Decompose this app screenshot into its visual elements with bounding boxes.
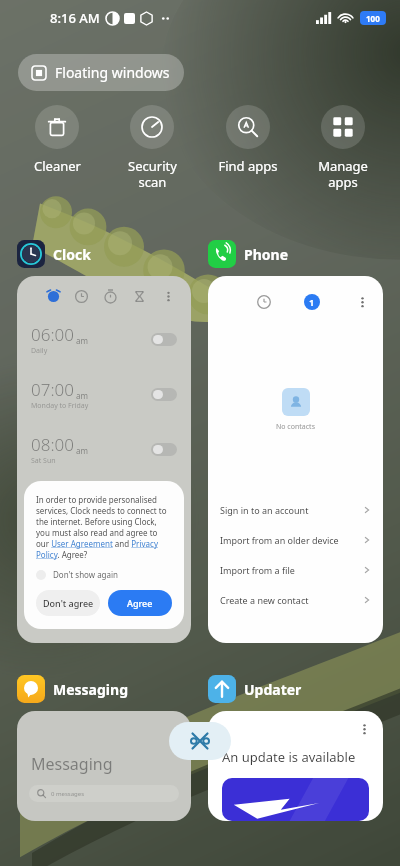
staticText: No contacts bbox=[276, 422, 315, 432]
staticText: Manage apps bbox=[318, 157, 368, 190]
button[interactable]: 06:00 bbox=[17, 276, 191, 643]
staticText: 06:00 bbox=[31, 323, 74, 346]
staticText: Messaging bbox=[31, 753, 113, 775]
button[interactable]: Manage apps bbox=[300, 101, 386, 194]
staticText: Import from an older device bbox=[220, 534, 339, 546]
button[interactable]: Floating windows bbox=[18, 54, 184, 91]
staticText: 08:00 bbox=[31, 433, 74, 456]
button[interactable]: 0 messages bbox=[29, 785, 179, 802]
staticText: Sat Sun bbox=[31, 456, 56, 466]
staticText: Updater bbox=[244, 680, 302, 699]
staticText: Agree bbox=[127, 597, 153, 609]
staticText: Don't agree bbox=[43, 597, 94, 609]
staticText: am bbox=[76, 335, 88, 346]
button[interactable]: Agree bbox=[108, 590, 172, 616]
button[interactable]: Security scan bbox=[109, 101, 195, 194]
button[interactable]: Sign in to an account bbox=[208, 495, 383, 525]
button[interactable]: Import from a file bbox=[208, 555, 383, 585]
staticText: Import from a file bbox=[220, 564, 295, 576]
button[interactable]: Import from an older device bbox=[208, 525, 383, 555]
staticText: Floating windows bbox=[55, 63, 170, 82]
staticText: Phone bbox=[244, 245, 289, 264]
button[interactable]: Don't show again bbox=[36, 569, 119, 580]
staticText: Find apps bbox=[218, 157, 278, 175]
button[interactable]: An update is available bbox=[208, 711, 383, 821]
staticText: Monday to Friday bbox=[31, 401, 89, 411]
staticText: am bbox=[76, 445, 88, 456]
staticText: 1 bbox=[309, 296, 315, 308]
staticText: 8:16 AM bbox=[50, 9, 100, 27]
staticText: Cleaner bbox=[34, 157, 81, 175]
staticText: 100 bbox=[366, 13, 380, 24]
staticText: Messaging bbox=[53, 680, 128, 699]
button[interactable] bbox=[151, 443, 177, 456]
staticText: Create a new contact bbox=[220, 594, 309, 606]
staticText: Daily bbox=[31, 346, 48, 356]
staticText: In order to provide personalised service… bbox=[36, 494, 172, 560]
button[interactable]: Split screen bbox=[169, 722, 231, 760]
button[interactable]: Messaging bbox=[17, 711, 191, 821]
button[interactable] bbox=[151, 333, 177, 346]
button[interactable]: Create a new contact bbox=[208, 585, 383, 615]
staticText: 0 messages bbox=[51, 790, 85, 798]
staticText: Sign in to an account bbox=[220, 504, 309, 516]
staticText: am bbox=[76, 390, 88, 401]
staticText: Security scan bbox=[128, 157, 177, 190]
button[interactable]: Cleaner bbox=[14, 101, 100, 179]
staticText: 07:00 bbox=[31, 378, 74, 401]
button[interactable]: Don't agree bbox=[36, 590, 100, 616]
button[interactable] bbox=[151, 388, 177, 401]
button[interactable]: 1 bbox=[208, 276, 383, 643]
staticText: Don't show again bbox=[53, 569, 119, 580]
button[interactable]: Find apps bbox=[205, 101, 291, 179]
staticText: An update is available bbox=[222, 748, 356, 766]
staticText: Clock bbox=[53, 245, 91, 264]
